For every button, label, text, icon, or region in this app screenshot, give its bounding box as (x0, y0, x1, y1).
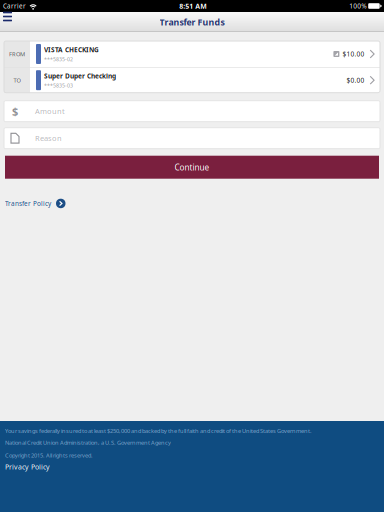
button[interactable]: FROM (4, 41, 380, 67)
staticText: 8:51 AM (179, 1, 207, 11)
staticText: Super Duper Checking (44, 71, 116, 80)
staticText: FROM (9, 50, 25, 58)
staticText: 100% (349, 2, 366, 10)
staticText: TO (13, 76, 20, 84)
button[interactable]: Transfer Policy (4, 179, 65, 212)
staticText: National Credit Union Administration, a … (5, 439, 171, 446)
staticText: $10.00 (342, 50, 364, 58)
staticText: Privacy Policy (5, 462, 50, 472)
staticText: Amount (35, 106, 65, 116)
staticText: ***5835-03 (44, 82, 73, 89)
staticText: $0.00 (346, 76, 364, 85)
staticText: ***5835-02 (44, 56, 73, 63)
staticText: Copyright 2015. All rights reserved. (5, 451, 93, 459)
staticText: Carrier (3, 2, 26, 10)
button[interactable]: Reason (4, 128, 380, 149)
button[interactable]: TO (4, 68, 380, 93)
staticText: Transfer Policy (5, 199, 51, 208)
staticText: Your savings federally insured to at lea… (5, 427, 312, 435)
button[interactable]: Continue (5, 156, 379, 179)
staticText: Reason (35, 133, 62, 143)
staticText: VISTA CHECKING (44, 45, 99, 54)
staticText: $ (12, 104, 18, 119)
staticText: Continue (174, 162, 209, 173)
button[interactable]: $ (4, 101, 380, 122)
button[interactable]: Privacy Policy (5, 459, 50, 476)
button[interactable]: Menu (0, 11, 20, 25)
staticText: Transfer Funds (159, 16, 224, 28)
